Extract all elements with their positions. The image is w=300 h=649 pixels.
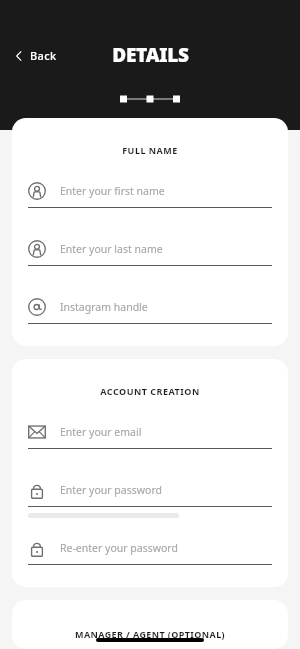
button[interactable]: Enter your password [28,479,272,507]
staticText: FULL NAME [28,144,272,156]
staticText: Re-enter your password [60,541,178,555]
button[interactable]: Instagram handle [28,296,272,324]
staticText: Enter your email [60,425,142,439]
staticText: Back [30,48,57,63]
staticText: Enter your first name [60,184,165,198]
button[interactable]: Enter your last name [28,238,272,266]
staticText: Enter your password [60,483,162,497]
staticText: MANAGER / AGENT (OPTIONAL) [75,628,226,640]
staticText: Enter your last name [60,242,163,256]
button[interactable]: Enter your first name [28,180,272,208]
button[interactable]: Back [10,44,61,67]
staticText: DETAILS [112,42,189,68]
button[interactable]: Re-enter your password [28,537,272,565]
staticText: ACCOUNT CREATION [28,385,272,397]
button[interactable]: Enter your email [28,421,272,449]
staticText: Instagram handle [60,300,148,314]
